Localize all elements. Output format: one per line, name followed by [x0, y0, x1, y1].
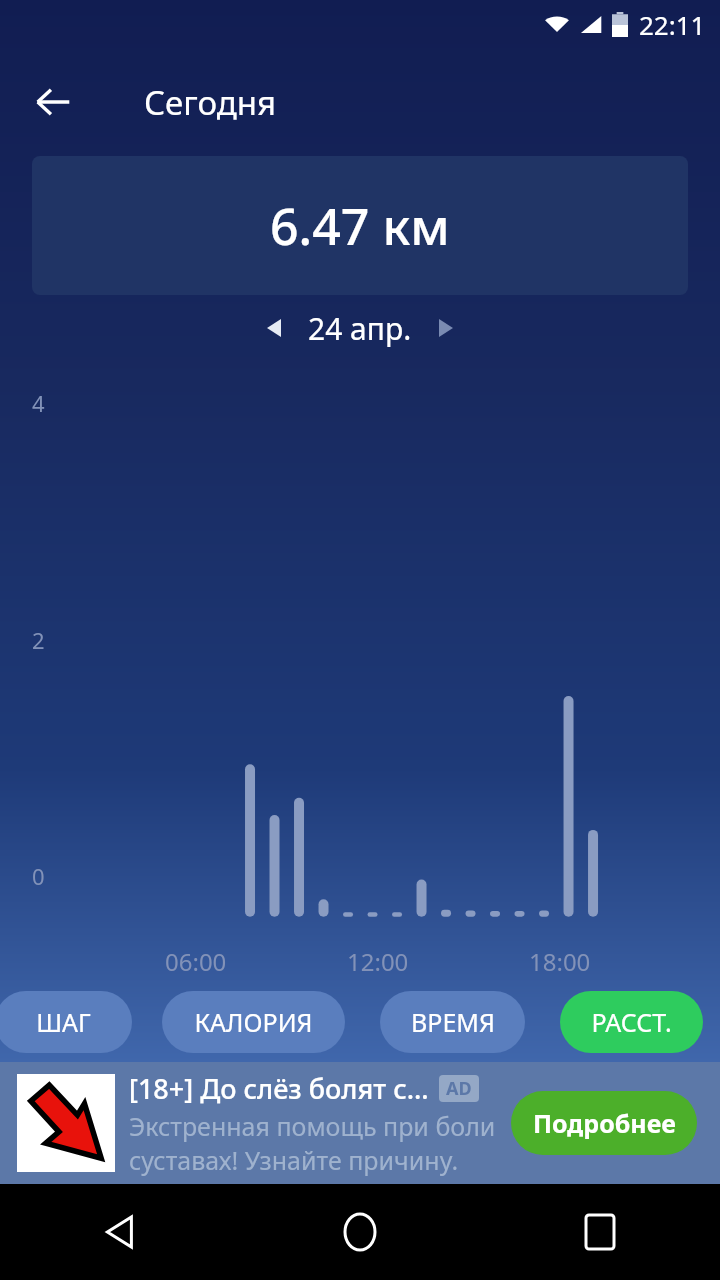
button[interactable]: Подробнее	[511, 1091, 697, 1155]
staticText: ВРЕМЯ	[411, 1005, 495, 1039]
button[interactable]: ШАГ	[0, 991, 132, 1053]
button[interactable]: [18+] До слёз болят с…	[0, 1062, 720, 1184]
button[interactable]: Home	[240, 1184, 480, 1280]
staticText: 06:00	[165, 945, 227, 978]
staticText: 0	[32, 861, 45, 891]
staticText: 12:00	[347, 945, 409, 978]
button[interactable]: Next day	[422, 304, 470, 352]
button[interactable]: РАССТ.	[560, 991, 703, 1053]
button[interactable]: Previous day	[250, 304, 298, 352]
staticText: AD	[446, 1076, 472, 1101]
button[interactable]: Recent apps	[480, 1184, 720, 1280]
staticText: 22:11	[639, 7, 706, 42]
staticText: Сегодня	[144, 80, 277, 125]
staticText: КАЛОРИЯ	[194, 1005, 313, 1039]
button[interactable]: 6.47 км	[32, 156, 688, 295]
staticText: 6.47 км	[270, 192, 450, 260]
button[interactable]: КАЛОРИЯ	[162, 991, 345, 1053]
button[interactable]: Back	[22, 71, 84, 133]
staticText: РАССТ.	[591, 1005, 672, 1039]
staticText: ШАГ	[36, 1005, 91, 1039]
button[interactable]: ВРЕМЯ	[380, 991, 525, 1053]
staticText: 24 апр.	[308, 308, 412, 349]
button[interactable]: Back	[0, 1184, 240, 1280]
staticText: суставах! Узнайте причину. По…	[129, 1143, 505, 1177]
staticText: 4	[32, 388, 45, 418]
staticText: 18:00	[529, 945, 591, 978]
staticText: Экстренная помощь при боли в	[129, 1109, 505, 1143]
staticText: 2	[32, 625, 45, 655]
staticText: Подробнее	[533, 1106, 676, 1140]
staticText: [18+] До слёз болят с…	[129, 1070, 429, 1107]
